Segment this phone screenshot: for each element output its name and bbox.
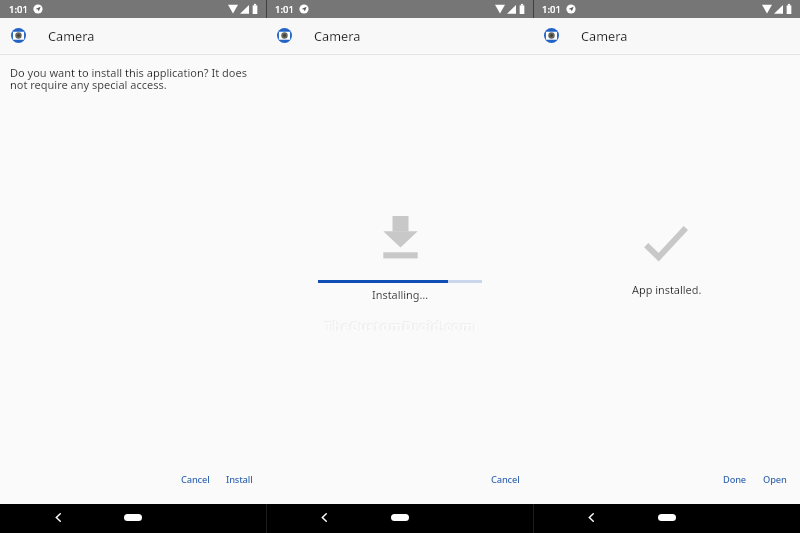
button[interactable]: Home (110, 504, 156, 533)
staticText: TheCustomDroid.com (325, 317, 475, 335)
staticText: Camera (581, 27, 628, 44)
button[interactable]: Done (718, 468, 752, 491)
staticText: 1:01 (542, 3, 561, 16)
button[interactable]: Back (266, 504, 382, 533)
staticText: Do you want to install this application?… (10, 65, 252, 92)
staticText: Done (723, 473, 747, 486)
staticText: Cancel (491, 473, 520, 486)
button[interactable]: Back (533, 504, 649, 533)
button[interactable]: Home (644, 504, 690, 533)
staticText: Installing… (372, 287, 429, 302)
button[interactable]: Home (377, 504, 423, 533)
staticText: 1:01 (9, 3, 28, 16)
button[interactable]: Cancel (176, 468, 215, 491)
staticText: Install (226, 473, 253, 486)
staticText: App installed. (632, 282, 702, 297)
button[interactable]: Install (221, 468, 258, 491)
staticText: Open (763, 473, 787, 486)
button[interactable]: Back (0, 504, 116, 533)
staticText: Camera (314, 27, 361, 44)
staticText: Cancel (181, 473, 210, 486)
staticText: Camera (48, 27, 95, 44)
button[interactable]: Cancel (486, 468, 525, 491)
staticText: TheCustomDroid.com (326, 317, 476, 335)
staticText: TheCustomDroid.com (324, 316, 474, 334)
button[interactable]: Open (758, 468, 792, 491)
staticText: 1:01 (275, 3, 294, 16)
